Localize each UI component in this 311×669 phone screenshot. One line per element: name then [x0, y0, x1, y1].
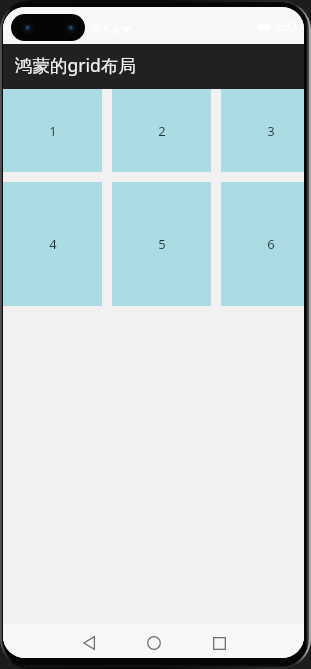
button[interactable]: Recents [206, 626, 232, 658]
staticText: 鸿蒙的grid布局 [15, 53, 136, 77]
staticText: 6 [267, 235, 275, 253]
button[interactable]: 5 [112, 182, 211, 306]
button[interactable]: Back [76, 626, 102, 658]
staticText: 2 [158, 122, 166, 140]
button[interactable]: 6 [221, 182, 304, 306]
button[interactable]: 3 [221, 89, 304, 172]
staticText: 1 [49, 122, 57, 140]
other: Front camera [11, 14, 85, 41]
button[interactable]: 鸿蒙的grid布局 [3, 44, 304, 89]
button[interactable]: 2 [112, 89, 211, 172]
staticText: 4 [49, 235, 57, 253]
button[interactable]: 4 [3, 182, 102, 306]
staticText: 5 [158, 235, 166, 253]
button[interactable]: 1 [3, 89, 102, 172]
button[interactable]: Home [141, 626, 167, 658]
staticText: 3 [267, 122, 275, 140]
